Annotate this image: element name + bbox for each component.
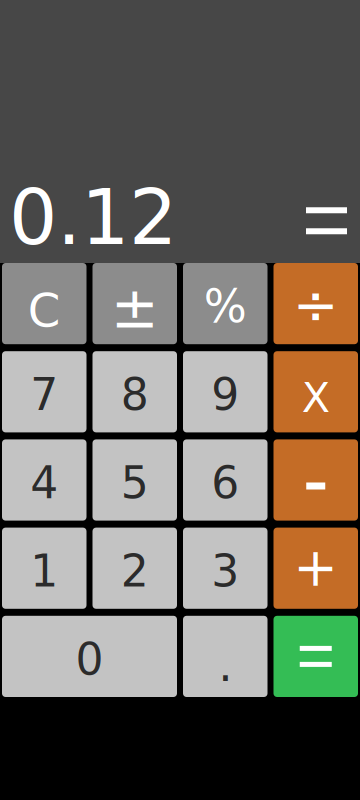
staticText: % xyxy=(204,280,247,333)
staticText: 1 xyxy=(30,546,58,597)
button[interactable]: ± xyxy=(92,263,177,344)
button[interactable]: + xyxy=(273,528,358,609)
button[interactable]: 5 xyxy=(92,439,177,521)
button[interactable]: 7 xyxy=(2,351,86,432)
button[interactable]: 0 xyxy=(2,616,177,697)
staticText: 0 xyxy=(75,634,103,685)
staticText: 2 xyxy=(121,546,149,597)
button[interactable]: 4 xyxy=(2,439,86,521)
button[interactable]: C xyxy=(2,263,86,344)
staticText: 9 xyxy=(211,369,239,420)
staticText: 5 xyxy=(121,457,149,509)
staticText: 8 xyxy=(121,369,149,420)
button[interactable]: 3 xyxy=(183,528,267,609)
staticText: + xyxy=(293,536,338,598)
button[interactable]: 9 xyxy=(183,351,267,432)
button[interactable]: ÷ xyxy=(273,263,358,344)
staticText: 4 xyxy=(30,457,58,509)
staticText: 3 xyxy=(211,546,239,597)
button[interactable]: . xyxy=(183,616,267,697)
button[interactable]: Minus xyxy=(273,439,358,521)
staticText: . xyxy=(218,639,232,692)
staticText: 6 xyxy=(211,457,239,509)
staticText: C xyxy=(28,283,61,338)
button[interactable]: 6 xyxy=(183,439,267,521)
button[interactable]: Equals xyxy=(273,616,358,697)
staticText: X xyxy=(302,374,330,422)
button[interactable]: 8 xyxy=(92,351,177,432)
button[interactable]: X xyxy=(273,351,358,432)
staticText: ± xyxy=(111,274,159,341)
staticText: ÷ xyxy=(293,273,339,336)
staticText: 0.12 xyxy=(9,173,177,262)
button[interactable]: % xyxy=(183,263,267,344)
button[interactable]: 2 xyxy=(92,528,177,609)
staticText: 7 xyxy=(30,369,58,420)
button[interactable]: 1 xyxy=(2,528,86,609)
